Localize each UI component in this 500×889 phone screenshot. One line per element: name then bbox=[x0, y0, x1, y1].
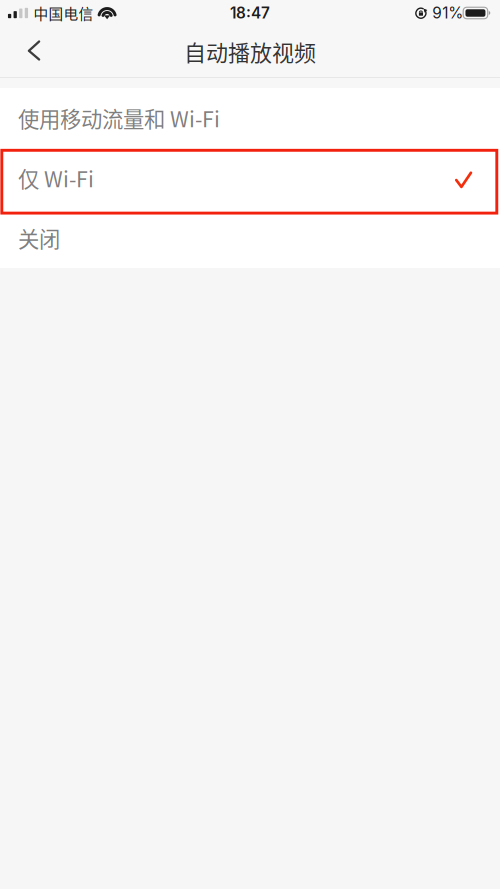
staticText: 关闭 bbox=[18, 223, 60, 253]
staticText: 使用移动流量和 Wi-Fi bbox=[18, 103, 220, 133]
staticText: 仅 Wi-Fi bbox=[18, 163, 94, 193]
button[interactable]: Back bbox=[0, 29, 56, 73]
button[interactable]: 使用移动流量和 Wi-Fi bbox=[0, 88, 500, 148]
button[interactable]: 关闭 bbox=[0, 208, 500, 268]
staticText: 中国电信 bbox=[33, 2, 93, 24]
staticText: 91% bbox=[432, 4, 463, 22]
staticText: 18:47 bbox=[230, 4, 270, 22]
staticText: 自动播放视频 bbox=[184, 36, 316, 67]
button[interactable]: 仅 Wi-Fi bbox=[0, 148, 500, 208]
